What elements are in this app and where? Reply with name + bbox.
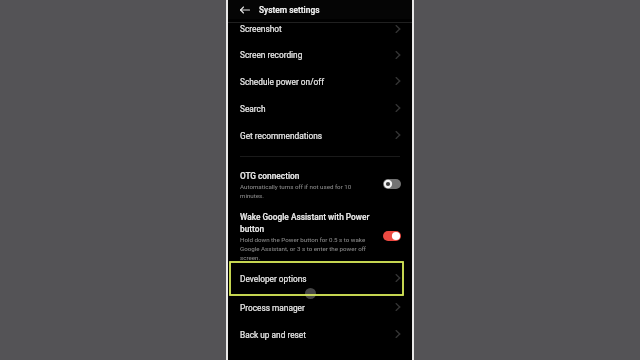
button[interactable]: Schedule power on/off [228,68,412,95]
staticText: Screenshot [240,24,282,34]
staticText: Developer options [240,274,307,284]
staticText: Process manager [240,303,305,313]
button[interactable]: Developer options [230,262,403,295]
button[interactable]: Switch on [383,231,401,241]
button[interactable]: Screen recording [228,41,412,68]
button[interactable]: Switch off [383,179,401,189]
staticText: Hold down the Power button for 0.5 s to … [240,236,371,261]
button[interactable]: OTG connection [228,165,412,203]
staticText: Search [240,104,266,114]
button[interactable]: Back up and reset [228,321,412,348]
button[interactable]: Back [238,3,252,17]
button[interactable]: Search [228,95,412,122]
button[interactable]: Get recommendations [228,122,412,149]
staticText: Get recommendations [240,131,323,141]
button[interactable]: Process manager [228,294,412,321]
staticText: Screen recording [240,50,303,60]
staticText: System settings [259,5,320,15]
staticText: Automatically turns off if not used for … [240,183,368,200]
staticText: OTG connection [240,171,300,181]
button[interactable]: Back [228,0,412,19]
staticText: Back up and reset [240,330,306,340]
button[interactable]: Wake Google Assistant with Power button [228,207,412,262]
staticText: Schedule power on/off [240,77,325,87]
staticText: Wake Google Assistant with Power button [240,212,371,234]
button[interactable]: Screenshot [228,22,412,35]
